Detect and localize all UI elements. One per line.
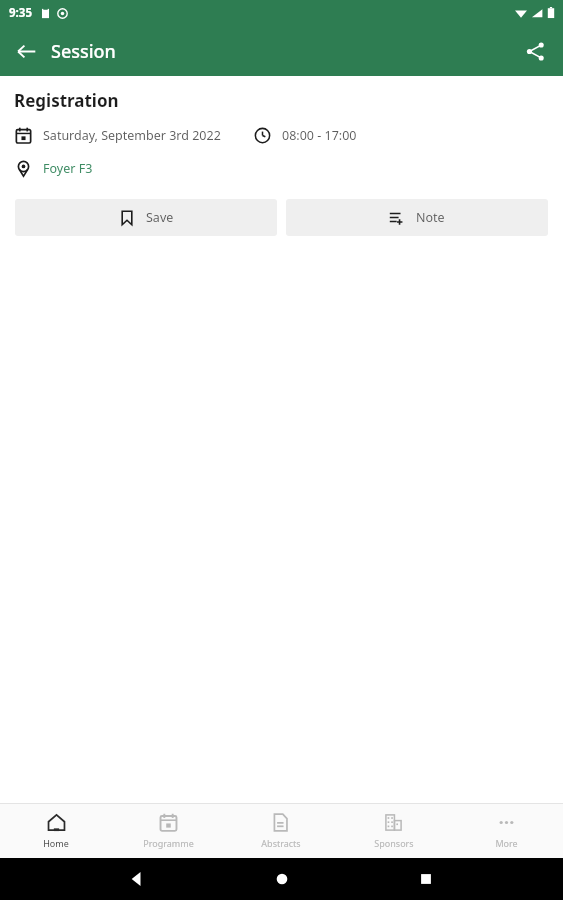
button[interactable]: Back (6, 31, 46, 71)
staticText: Saturday, September 3rd 2022 (43, 127, 221, 144)
staticText: Save (146, 209, 174, 226)
button[interactable]: Share (515, 31, 555, 71)
button[interactable]: Sponsors (337, 804, 450, 858)
button[interactable]: Programme (112, 804, 224, 858)
staticText: More (495, 837, 518, 849)
staticText: Foyer F3 (43, 160, 93, 177)
button[interactable]: Save (15, 199, 277, 236)
staticText: Note (416, 209, 445, 226)
button[interactable]: Abstracts (224, 804, 337, 858)
button[interactable]: Foyer F3 (0, 160, 563, 177)
staticText: Programme (143, 837, 194, 849)
button[interactable]: More (450, 804, 563, 858)
button[interactable]: Home (0, 804, 112, 858)
staticText: Session (51, 39, 116, 64)
staticText: 9:35 (9, 5, 32, 21)
button[interactable]: Note (286, 199, 548, 236)
staticText: Registration (14, 89, 119, 112)
staticText: Home (43, 837, 69, 849)
staticText: 08:00 - 17:00 (282, 127, 357, 144)
staticText: Abstracts (261, 837, 301, 849)
staticText: Sponsors (374, 837, 414, 849)
